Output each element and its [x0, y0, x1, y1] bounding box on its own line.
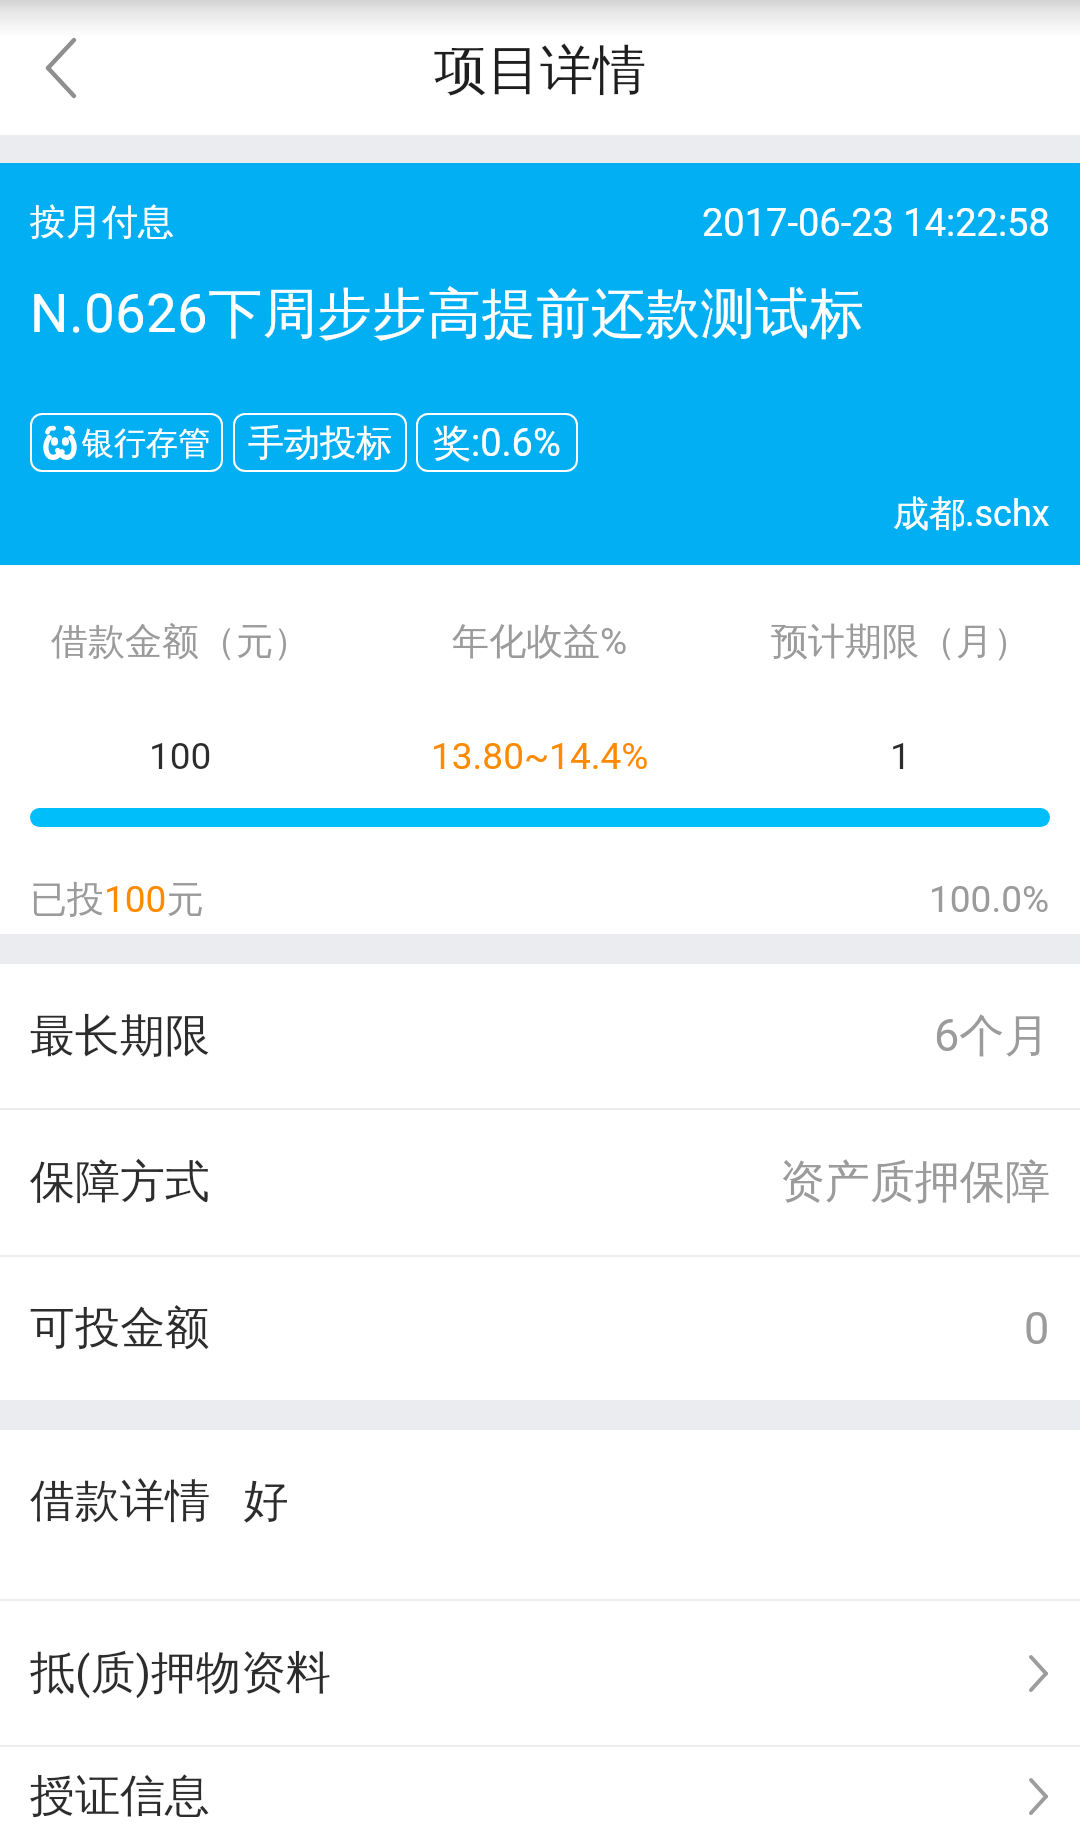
button[interactable]: 抵(质)押物资料 [0, 1601, 1080, 1745]
button[interactable]: 最长期限 [0, 964, 1080, 1108]
staticText: 保障方式 [30, 1154, 210, 1211]
button[interactable]: Back [22, 29, 100, 107]
button[interactable]: 借款详情 好 [0, 1430, 1080, 1599]
staticText: 按月付息 [30, 199, 174, 244]
staticText: 成都.schx [893, 491, 1050, 536]
staticText: 13.80~14.4% [431, 735, 649, 778]
button[interactable]: 可投金额 [0, 1257, 1080, 1400]
staticText: 100 [149, 735, 212, 778]
staticText: 项目详情 [434, 37, 646, 104]
staticText: 可投金额 [30, 1300, 210, 1357]
button[interactable]: 银行存管 [30, 413, 223, 472]
staticText: 2017-06-23 14:22:58 [702, 201, 1050, 246]
staticText: 借款金额（元） [51, 618, 310, 665]
staticText: 1 [890, 735, 911, 778]
staticText: 预计期限（月） [771, 618, 1030, 665]
staticText: 年化收益% [452, 618, 628, 665]
staticText: 6个月 [934, 1008, 1050, 1065]
staticText: 奖:0.6% [433, 419, 561, 467]
staticText: N.0626下周步步高提前还款测试标 [30, 280, 865, 348]
button[interactable]: 授证信息 [0, 1747, 1080, 1845]
staticText: 资产质押保障 [780, 1154, 1050, 1211]
button[interactable]: 保障方式 [0, 1110, 1080, 1255]
staticText: 已投100元 [30, 876, 204, 923]
staticText: 100.0% [929, 878, 1050, 921]
staticText: 最长期限 [30, 1008, 210, 1065]
staticText: 借款详情 好 [30, 1473, 289, 1530]
staticText: 0 [1024, 1302, 1050, 1355]
staticText: 抵(质)押物资料 [30, 1645, 332, 1702]
staticText: 银行存管 [82, 423, 210, 463]
button[interactable]: 手动投标 [233, 413, 407, 472]
button[interactable]: 奖:0.6% [416, 413, 578, 472]
staticText: 手动投标 [248, 420, 392, 465]
staticText: 授证信息 [30, 1768, 210, 1825]
